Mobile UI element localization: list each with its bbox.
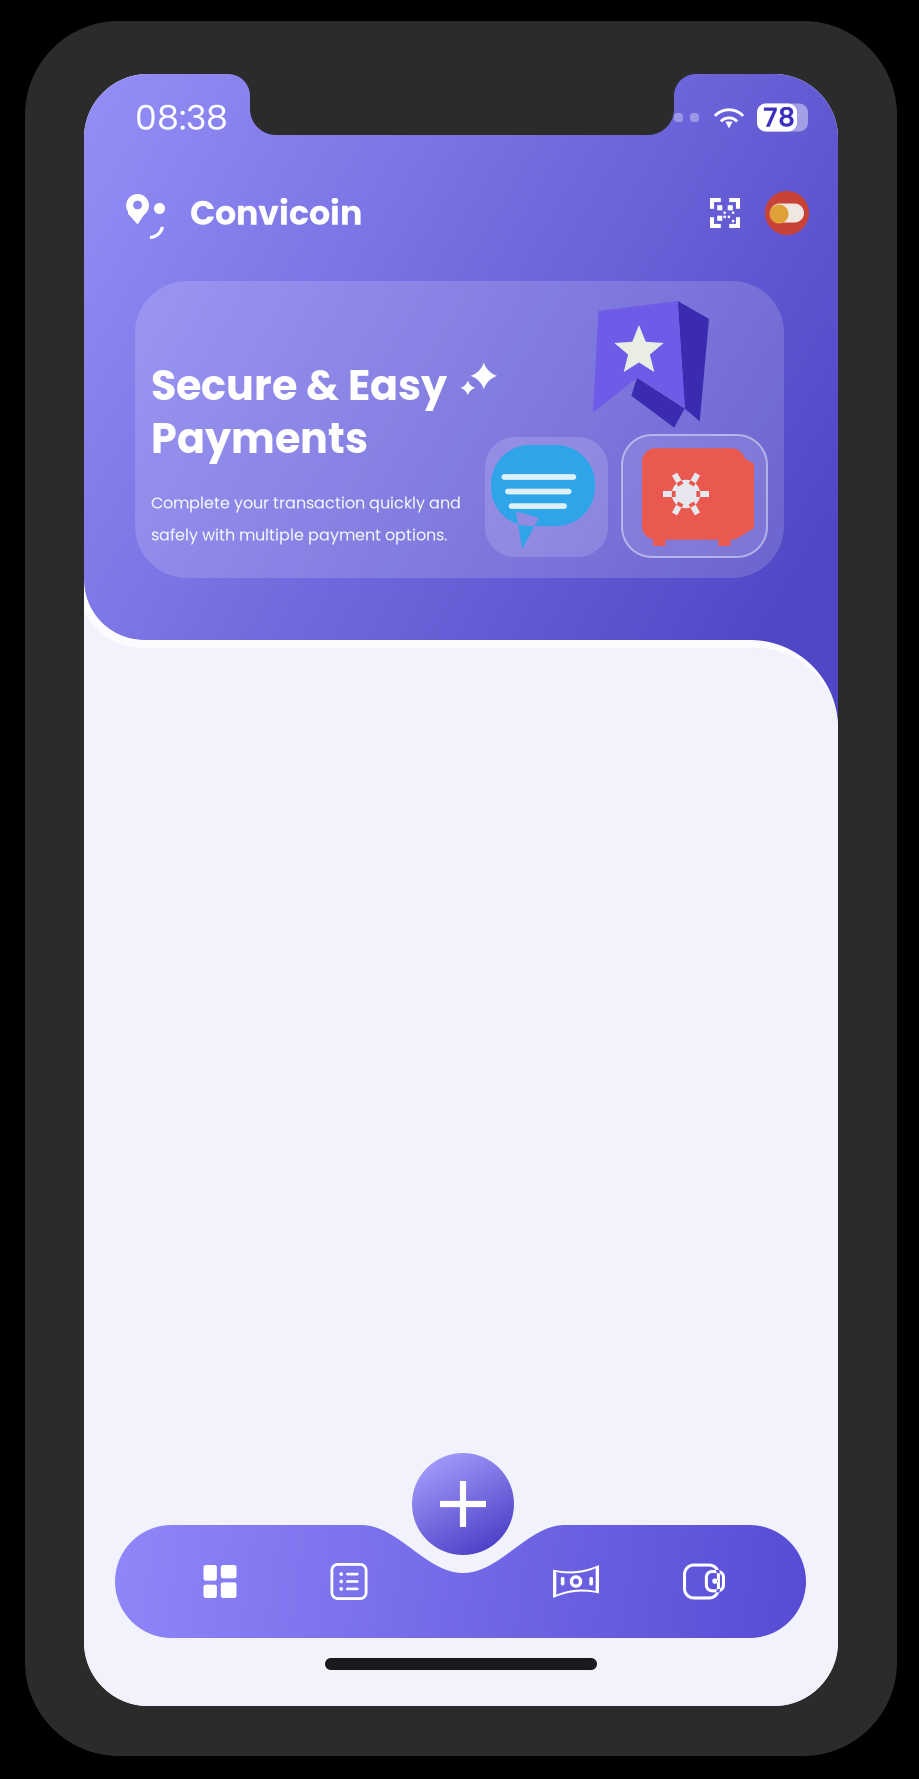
button[interactable]: Dashboard <box>157 1525 285 1638</box>
button[interactable]: Scan QR code <box>698 186 753 240</box>
staticText: 78 <box>763 99 795 136</box>
button[interactable]: Wallet <box>640 1525 768 1638</box>
staticText: 08:38 <box>135 93 228 142</box>
button[interactable]: Cash <box>512 1525 640 1638</box>
button[interactable]: Add transaction <box>412 1453 514 1555</box>
staticText: Convicoin <box>190 190 362 236</box>
button[interactable]: Transactions <box>285 1525 413 1638</box>
staticText: Payments <box>151 410 368 467</box>
button[interactable]: Convicoin home <box>122 191 166 235</box>
staticText: Complete your transaction quickly and <box>151 492 461 514</box>
button[interactable]: Profile <box>765 191 809 235</box>
staticText: Secure & Easy <box>151 357 447 414</box>
staticText: safely with multiple payment options. <box>151 524 447 546</box>
